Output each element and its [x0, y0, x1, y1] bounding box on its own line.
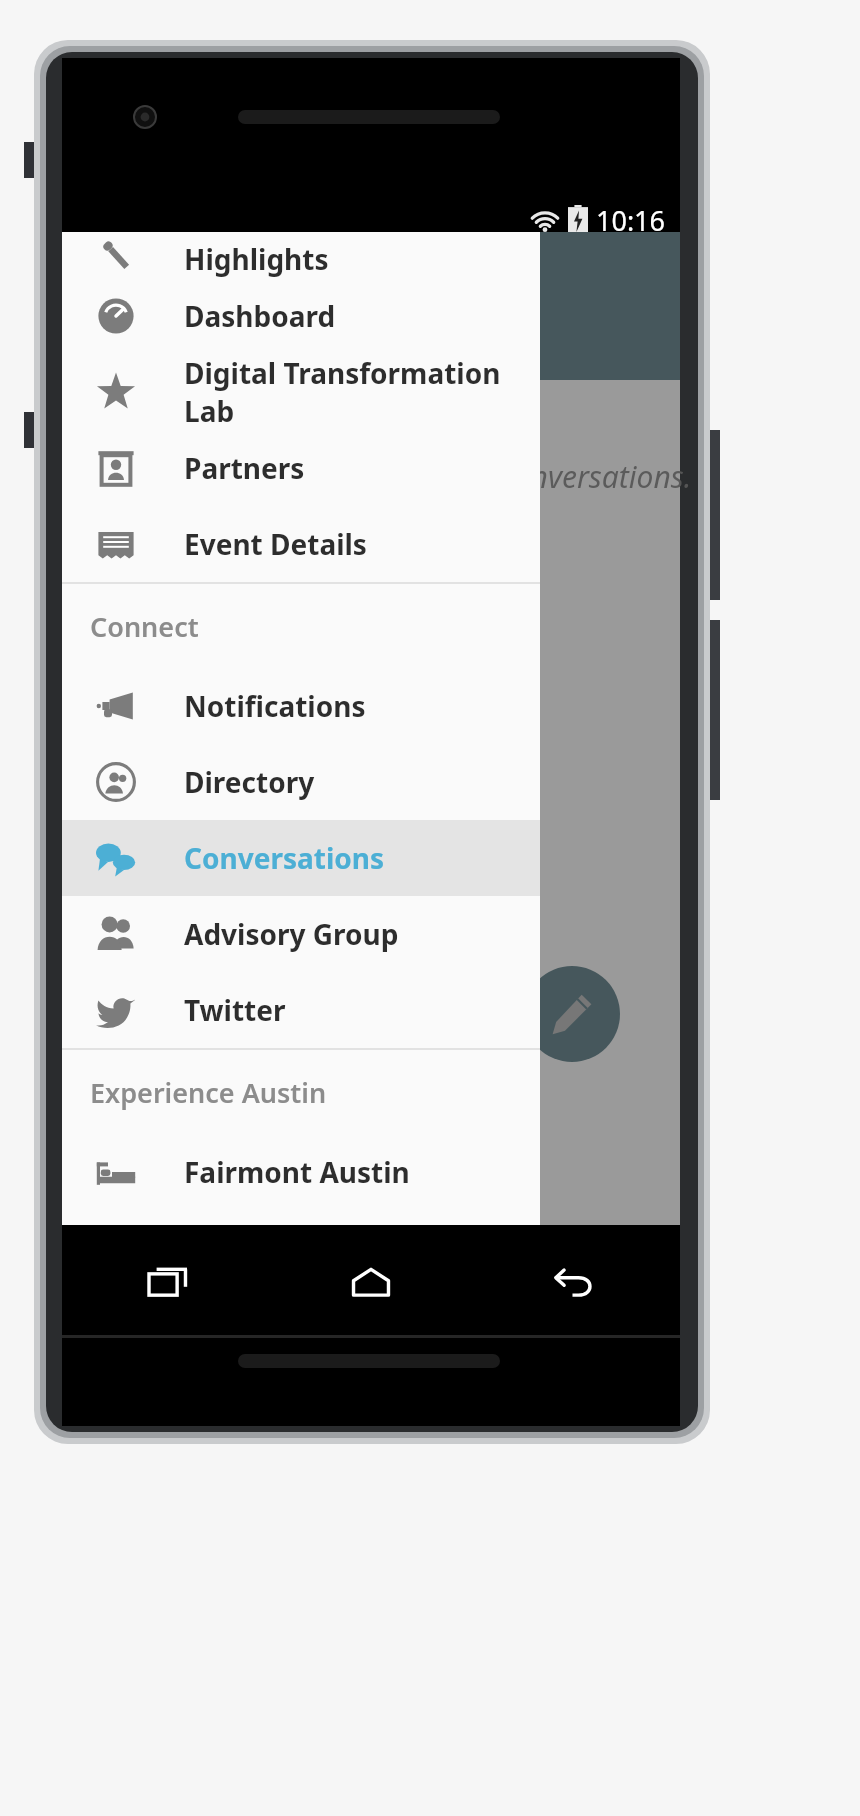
staticText: Twitter — [184, 991, 286, 1029]
staticText: Fairmont Austin — [184, 1153, 410, 1191]
button[interactable]: Event Details — [62, 506, 540, 582]
button[interactable]: Digital Transformation Lab — [62, 354, 540, 430]
staticText: Connect — [90, 608, 199, 645]
button[interactable]: Home — [335, 1247, 407, 1319]
staticText: Join the conversations. — [392, 456, 692, 497]
button[interactable]: Back — [538, 1247, 610, 1319]
staticText: Digital Transformation Lab — [184, 354, 540, 430]
staticText: Experience Austin — [90, 1074, 327, 1111]
staticText: Dashboard — [184, 297, 336, 335]
staticText: Highlights — [184, 240, 329, 278]
button[interactable]: Highlights — [62, 232, 540, 278]
staticText: Partners — [184, 449, 305, 487]
button[interactable]: Partners — [62, 430, 540, 506]
staticText: Conversations — [184, 839, 385, 877]
button[interactable]: Conversations — [62, 820, 540, 896]
button[interactable]: Compose — [524, 966, 620, 1062]
staticText: Notifications — [184, 687, 366, 725]
button[interactable]: Recents — [132, 1247, 204, 1319]
button[interactable]: Notifications — [62, 668, 540, 744]
staticText: 10:16 — [596, 202, 666, 239]
button[interactable]: Twitter — [62, 972, 540, 1048]
button[interactable]: Dashboard — [62, 278, 540, 354]
staticText: Event Details — [184, 525, 367, 563]
button[interactable]: Directory — [62, 744, 540, 820]
staticText: Advisory Group — [184, 915, 399, 953]
button[interactable]: Fairmont Austin — [62, 1134, 540, 1210]
staticText: Directory — [184, 763, 315, 801]
button[interactable]: Advisory Group — [62, 896, 540, 972]
